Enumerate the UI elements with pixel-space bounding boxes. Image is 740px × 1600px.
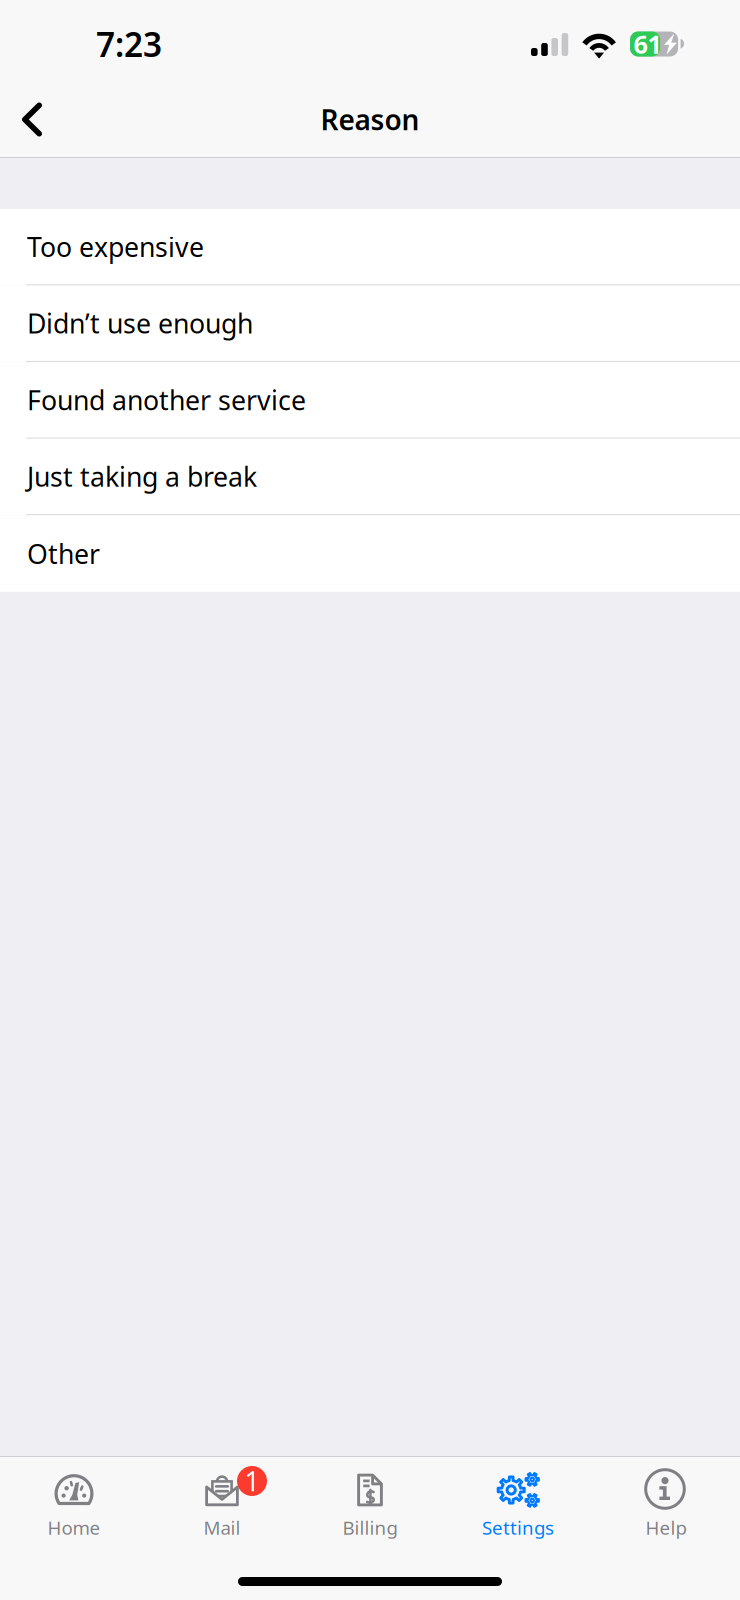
button[interactable]: Billing: [296, 1457, 444, 1544]
staticText: 7:23: [96, 22, 162, 66]
staticText: Other: [27, 536, 100, 571]
staticText: Mail: [203, 1515, 240, 1540]
button[interactable]: Other: [0, 515, 740, 592]
button[interactable]: Home: [0, 1457, 148, 1544]
staticText: Reason: [320, 101, 419, 138]
staticText: Didn’t use enough: [27, 305, 253, 341]
button[interactable]: Just taking a break: [0, 439, 740, 515]
staticText: 61: [634, 27, 662, 61]
staticText: Help: [645, 1515, 686, 1540]
button[interactable]: Help: [592, 1457, 740, 1544]
button[interactable]: Found another service: [0, 362, 740, 439]
staticText: Found another service: [27, 382, 306, 417]
button[interactable]: Back: [0, 86, 70, 152]
staticText: 1: [244, 1463, 259, 1499]
button[interactable]: Too expensive: [0, 209, 740, 286]
staticText: Billing: [342, 1515, 397, 1540]
button[interactable]: Didn’t use enough: [0, 286, 740, 362]
button[interactable]: Settings: [444, 1457, 592, 1544]
button[interactable]: 1: [148, 1457, 296, 1544]
staticText: Home: [47, 1515, 100, 1540]
staticText: Settings: [482, 1515, 554, 1540]
staticText: Too expensive: [27, 229, 204, 264]
staticText: Just taking a break: [27, 459, 257, 494]
